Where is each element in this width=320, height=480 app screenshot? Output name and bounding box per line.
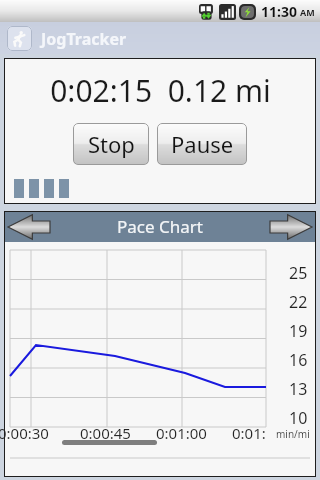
button[interactable]: Previous chart [8,214,50,240]
staticText: 0:01: [232,423,266,443]
other: JogTracker icon [7,26,32,51]
staticText: 11:30 [261,2,297,21]
staticText: AM [300,6,315,18]
staticText: 19 [289,320,308,342]
button[interactable]: Stop [73,123,149,165]
staticText: 0:00:30 [0,423,49,443]
staticText: 0:00:45 [80,423,131,443]
staticText: 0:01:00 [156,423,207,443]
staticText: Pace Chart [117,215,203,238]
staticText: Stop [88,129,135,159]
staticText: 13 [289,378,308,400]
staticText: 0:02:15 0.12 mi [50,70,271,111]
staticText: JogTracker [41,28,127,50]
button[interactable]: Pause [157,123,247,165]
staticText: Pause [171,129,234,159]
staticText: min/mi [276,427,310,441]
staticText: 22 [289,291,308,313]
staticText: 25 [289,262,308,284]
staticText: 10 [289,407,308,429]
staticText: 16 [289,349,308,371]
button[interactable]: Next chart [270,214,312,240]
